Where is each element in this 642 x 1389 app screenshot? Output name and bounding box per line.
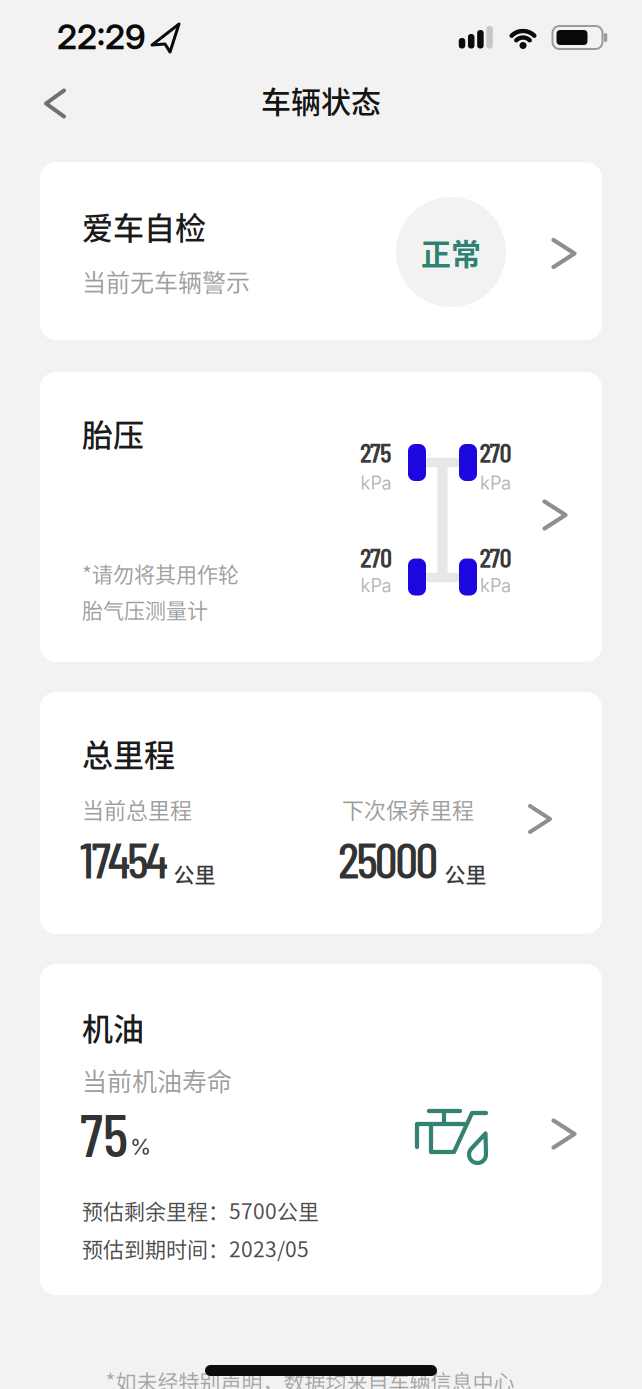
- button[interactable]: 胎压: [40, 372, 602, 662]
- staticText: 当前机油寿命: [82, 1062, 232, 1098]
- button[interactable]: 总里程: [40, 692, 602, 934]
- staticText: 75: [80, 1097, 128, 1169]
- staticText: 预估剩余里程：5700公里: [82, 1195, 319, 1225]
- staticText: 机油: [82, 1005, 144, 1049]
- staticText: 22:29: [57, 16, 146, 57]
- staticText: 275: [360, 436, 392, 468]
- staticText: kPa: [480, 472, 511, 494]
- staticText: 公里: [174, 858, 216, 889]
- staticText: 270: [360, 541, 392, 573]
- button[interactable]: Back: [33, 81, 77, 125]
- staticText: 车辆状态: [261, 78, 381, 122]
- staticText: kPa: [360, 472, 391, 494]
- staticText: 当前无车辆警示: [82, 264, 250, 298]
- staticText: 正常: [421, 230, 481, 274]
- button[interactable]: 爱车自检: [40, 162, 602, 340]
- staticText: %: [130, 1133, 151, 1160]
- staticText: 25000: [338, 827, 439, 889]
- staticText: 当前总里程: [82, 793, 192, 825]
- staticText: 270: [479, 541, 511, 573]
- staticText: 爱车自检: [82, 204, 206, 248]
- staticText: *如未经特别声明，数据均来自车辆信息中心: [105, 1365, 514, 1389]
- staticText: 270: [479, 436, 511, 468]
- staticText: 公里: [445, 858, 487, 889]
- staticText: 胎压: [82, 411, 144, 455]
- staticText: *请勿将其用作轮: [82, 558, 239, 588]
- staticText: kPa: [360, 575, 391, 596]
- staticText: 17454: [80, 827, 168, 889]
- staticText: 下次保养里程: [342, 793, 474, 825]
- staticText: 预估到期时间：2023/05: [82, 1233, 309, 1263]
- button[interactable]: 机油: [40, 964, 602, 1295]
- staticText: 总里程: [82, 731, 175, 775]
- staticText: kPa: [480, 575, 511, 596]
- staticText: 胎气压测量计: [82, 594, 208, 624]
